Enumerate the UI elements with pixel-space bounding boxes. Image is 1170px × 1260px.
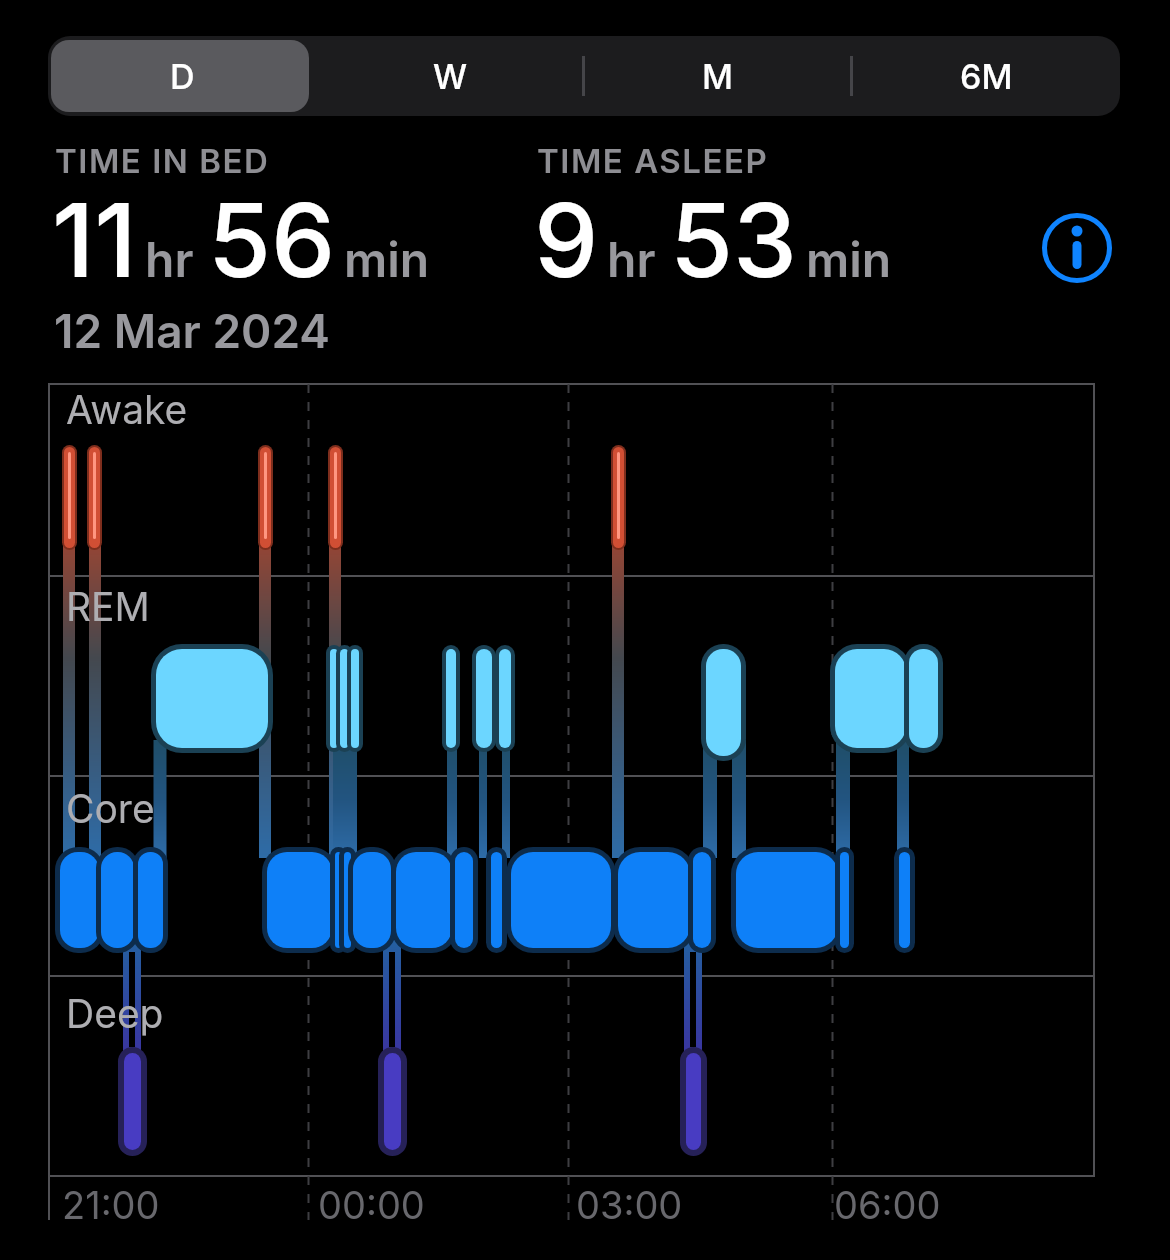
staticText: hr [145,230,194,288]
staticText: hr [607,230,656,288]
staticText: 12 Mar 2024 [54,303,330,359]
staticText: 03:00 [576,1182,683,1228]
staticText: 6M [960,56,1013,97]
staticText: 06:00 [834,1182,941,1228]
staticText: 11 [52,178,137,301]
staticText: min [344,230,430,288]
staticText: 9 [534,178,599,301]
staticText: 53 [670,178,798,301]
staticText: 00:00 [318,1182,425,1228]
staticText: TIME IN BED [55,141,270,181]
staticText: TIME ASLEEP [537,141,769,181]
button[interactable]: M [584,36,852,116]
button[interactable]: 6M [852,36,1120,116]
staticText: Deep [66,990,164,1037]
button[interactable]: D [48,36,316,116]
staticText: M [702,56,734,97]
button[interactable]: W [316,36,584,116]
staticText: W [433,56,468,97]
staticText: 21:00 [62,1182,160,1228]
button[interactable] [1040,211,1114,285]
staticText: Core [66,785,155,832]
staticText: Awake [66,386,188,433]
staticText: D [170,56,195,97]
staticText: REM [66,583,150,630]
staticText: min [806,230,892,288]
staticText: 56 [208,178,336,301]
